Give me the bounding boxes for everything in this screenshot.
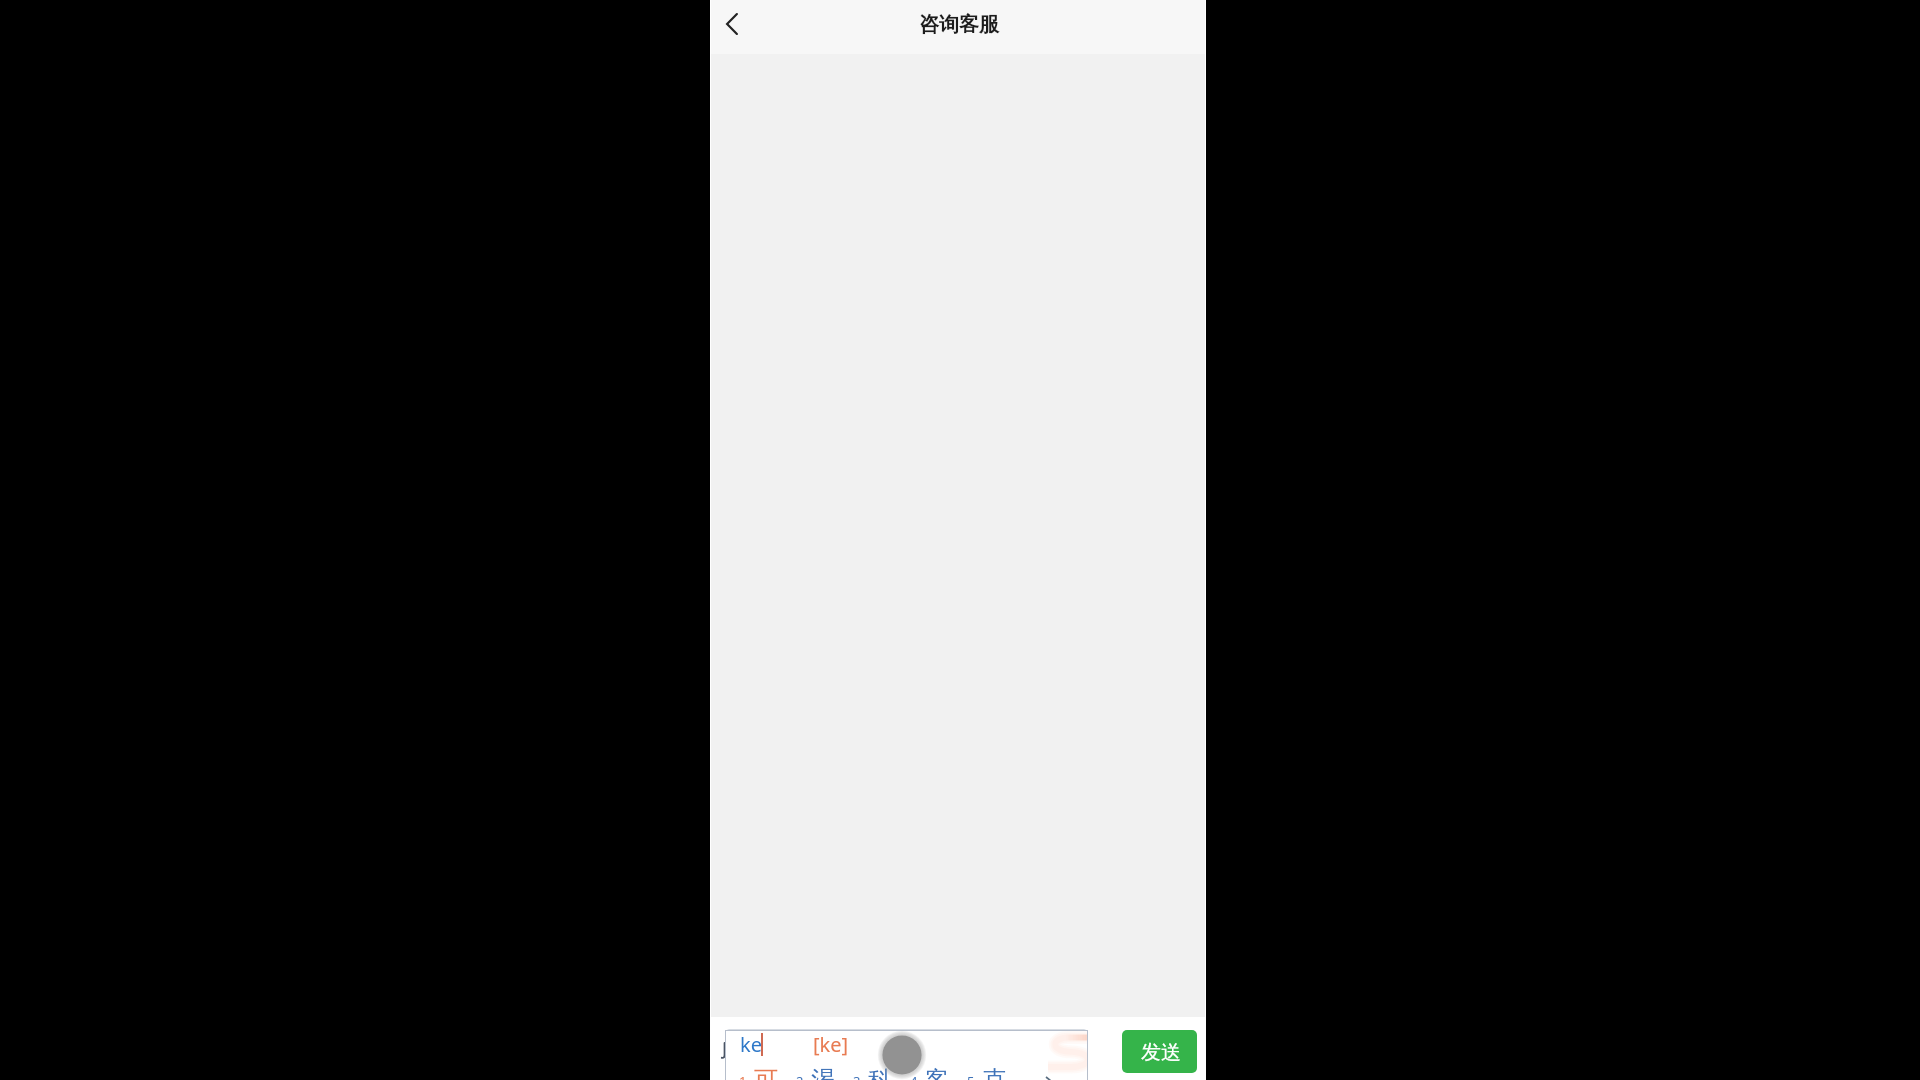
button[interactable]: 1 xyxy=(735,1061,779,1080)
staticText: 3 xyxy=(853,1072,861,1080)
staticText: 可 xyxy=(754,1065,778,1080)
button[interactable]: 发送 xyxy=(1122,1030,1197,1073)
staticText: 5 xyxy=(967,1072,975,1080)
button[interactable]: 5 xyxy=(963,1061,1007,1080)
staticText: 发送 xyxy=(1141,1040,1181,1065)
button[interactable]: 3 xyxy=(849,1061,893,1080)
staticText: 1 xyxy=(739,1072,747,1080)
staticText: [ke] xyxy=(813,1031,849,1058)
staticText: 克 xyxy=(982,1065,1006,1080)
staticText: 咨询客服 xyxy=(919,12,999,37)
button[interactable]: Back xyxy=(710,2,754,46)
staticText: 4 xyxy=(910,1072,918,1080)
staticText: ke xyxy=(740,1031,762,1058)
staticText: 科 xyxy=(868,1065,892,1080)
staticText: 渴 xyxy=(811,1065,835,1080)
button[interactable]: 2 xyxy=(792,1061,836,1080)
button[interactable]: Message input xyxy=(725,1029,1088,1071)
button[interactable]: 4 xyxy=(906,1061,950,1080)
staticText: 2 xyxy=(796,1072,804,1080)
staticText: 客 xyxy=(925,1065,949,1080)
